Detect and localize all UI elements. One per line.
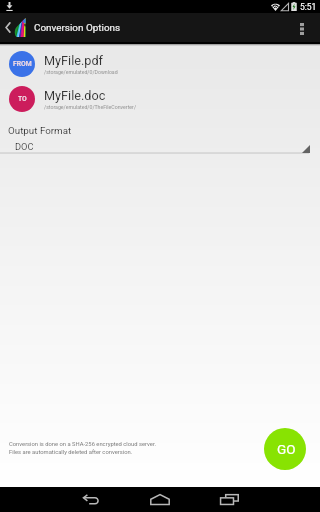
button[interactable]: Back xyxy=(61,487,121,512)
staticText: Output Format xyxy=(8,125,72,136)
staticText: /storage/emulated/0/TheFileConverter/ xyxy=(44,104,137,110)
button[interactable]: FROM xyxy=(0,51,320,81)
button[interactable]: Home xyxy=(130,487,190,512)
staticText: DOC xyxy=(15,141,34,152)
button[interactable]: Recent apps xyxy=(199,487,259,512)
button[interactable]: More options xyxy=(292,13,316,42)
staticText: GO xyxy=(277,441,296,457)
staticText: MyFile.pdf xyxy=(44,53,104,68)
staticText: Conversion Options xyxy=(34,22,121,34)
staticText: Conversion is done on a SHA-256 encrypte… xyxy=(9,441,157,448)
staticText: FROM xyxy=(13,60,32,68)
button[interactable]: GO xyxy=(264,428,306,470)
staticText: 5:51 xyxy=(300,2,317,12)
button[interactable]: Navigate up xyxy=(1,13,15,42)
staticText: Files are automatically deleted after co… xyxy=(9,449,133,456)
staticText: /storage/emulated/0/Download xyxy=(44,69,118,75)
button[interactable]: DOC xyxy=(0,140,320,156)
button[interactable]: TO xyxy=(0,86,320,116)
staticText: TO xyxy=(18,95,27,103)
staticText: MyFile.doc xyxy=(44,88,106,103)
